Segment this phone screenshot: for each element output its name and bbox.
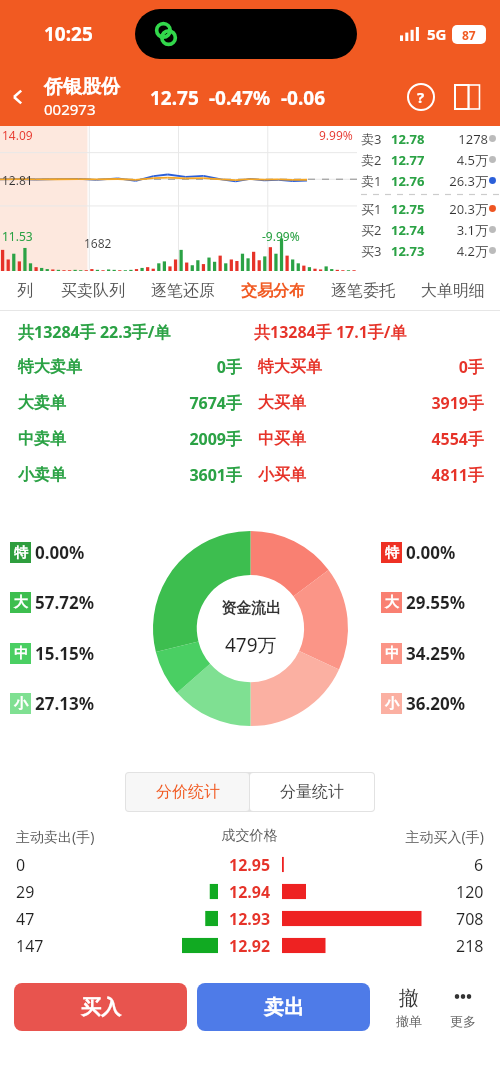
staticText: 26.3万 [431, 172, 488, 190]
button[interactable]: 买1 [361, 198, 500, 219]
button[interactable]: 中卖单 [18, 421, 242, 457]
staticText: 10:25 [44, 21, 93, 47]
button[interactable]: 特大买单 [258, 349, 484, 385]
staticText: 资金流出 [221, 599, 281, 618]
button[interactable]: 特大卖单 [18, 349, 242, 385]
button[interactable]: 大买单 [258, 385, 484, 421]
button[interactable]: 逐笔还原 [138, 271, 228, 311]
staticText: 3919手 [306, 392, 484, 414]
staticText: 12.95 [229, 854, 271, 876]
staticText: 中卖单 [18, 429, 66, 449]
staticText: 57.72% [35, 591, 95, 614]
button[interactable]: 卖3 [361, 128, 500, 149]
staticText: 4.5万 [431, 151, 488, 169]
staticText: -9.99% [262, 228, 300, 244]
button[interactable]: 147 [0, 932, 500, 959]
button[interactable]: 小买单 [258, 457, 484, 493]
button[interactable]: 分价统计 [126, 773, 249, 811]
button[interactable]: 买2 [361, 219, 500, 240]
staticText: 20.3万 [431, 200, 488, 218]
button[interactable]: 大单明细 [408, 271, 498, 311]
button[interactable]: 卖1 [361, 170, 500, 191]
staticText: 12.78 [391, 130, 431, 148]
staticText: 36.20% [406, 692, 466, 715]
button[interactable]: 大 [381, 591, 466, 614]
staticText: ? [417, 87, 425, 107]
button[interactable]: 47 [0, 905, 500, 932]
button[interactable]: 特 [381, 541, 456, 564]
button[interactable]: Back [0, 68, 36, 126]
staticText: 87 [462, 27, 476, 43]
staticText: 更多 [450, 1013, 476, 1029]
button[interactable]: 29 [0, 878, 500, 905]
staticText: 卖2 [361, 151, 391, 169]
staticText: 29.55% [406, 591, 466, 614]
button[interactable]: 逐笔委托 [318, 271, 408, 311]
button[interactable]: 撤 [382, 979, 436, 1035]
staticText: 12.75 [150, 85, 199, 111]
button[interactable]: 中 [381, 642, 466, 665]
staticText: 主动买入(手) [333, 827, 484, 846]
staticText: 分量统计 [280, 782, 344, 802]
button[interactable]: 大卖单 [18, 385, 242, 421]
button[interactable]: Help [404, 80, 438, 114]
staticText: 特 [14, 544, 28, 562]
button[interactable]: 小 [10, 692, 95, 715]
staticText: 0.00% [35, 541, 85, 564]
button[interactable]: 卖2 [361, 149, 500, 170]
staticText: 买入 [81, 995, 121, 1020]
staticText: 1682 [84, 235, 112, 251]
staticText: 147 [16, 935, 44, 957]
staticText: 主动卖出(手) [16, 827, 166, 846]
staticText: 中买单 [258, 429, 306, 449]
staticText: 9.99% [319, 127, 353, 143]
staticText: 002973 [44, 99, 96, 119]
staticText: 撤单 [396, 1013, 422, 1029]
staticText: 12.77 [391, 151, 431, 169]
button[interactable]: 中 [10, 642, 95, 665]
button[interactable]: 大 [10, 591, 95, 614]
staticText: 中 [385, 645, 399, 663]
staticText: 12.93 [229, 908, 271, 930]
staticText: 3601手 [66, 464, 242, 486]
staticText: 小卖单 [18, 465, 66, 485]
button[interactable]: 分量统计 [250, 773, 374, 811]
staticText: 12.81 [2, 172, 33, 188]
staticText: 大卖单 [18, 393, 66, 413]
button[interactable]: 买卖队列 [48, 271, 138, 311]
staticText: 5G [427, 24, 447, 44]
button[interactable]: 小 [381, 692, 466, 715]
button[interactable]: 交易分布 [228, 271, 318, 311]
button[interactable]: 卖出 [197, 983, 370, 1031]
button[interactable]: Fullscreen [450, 80, 484, 114]
staticText: 29 [16, 881, 35, 903]
staticText: 大 [385, 594, 399, 612]
button[interactable]: 特 [10, 541, 85, 564]
staticText: -0.47% [209, 85, 271, 111]
staticText: 小买单 [258, 465, 306, 485]
staticText: 卖出 [264, 995, 304, 1020]
staticText: 撤 [399, 986, 419, 1011]
staticText: 逐笔还原 [151, 281, 215, 301]
button[interactable]: 列 [2, 271, 48, 311]
staticText: 27.13% [35, 692, 95, 715]
staticText: 列 [17, 281, 33, 301]
button[interactable]: 买3 [361, 240, 500, 261]
staticText: 3.1万 [431, 221, 488, 239]
staticText: 47 [16, 908, 35, 930]
staticText: 0.00% [406, 541, 456, 564]
button[interactable]: ••• [436, 979, 490, 1035]
staticText: 特 [385, 544, 399, 562]
staticText: 12.74 [391, 221, 431, 239]
button[interactable]: 中买单 [258, 421, 484, 457]
staticText: 小 [14, 695, 28, 713]
staticText: 15.15% [35, 642, 95, 665]
button[interactable]: 0 [0, 851, 500, 878]
staticText: 11.53 [2, 228, 33, 244]
staticText: -0.06 [281, 85, 326, 111]
button[interactable]: 小卖单 [18, 457, 242, 493]
staticText: 1278 [431, 130, 488, 148]
button[interactable]: 买入 [14, 983, 187, 1031]
staticText: ••• [454, 985, 473, 1007]
staticText: 成交价格 [166, 827, 333, 845]
